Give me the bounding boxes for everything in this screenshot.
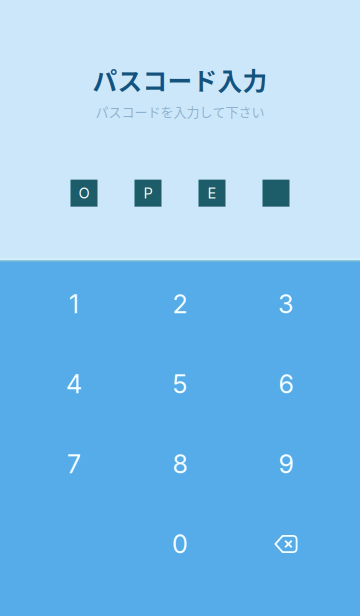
staticText: O: [78, 184, 89, 202]
button[interactable]: 0: [127, 504, 233, 584]
staticText: パスコード入力: [92, 62, 267, 98]
staticText: E: [207, 184, 216, 202]
staticText: P: [143, 184, 152, 202]
button[interactable]: Delete: [233, 504, 339, 584]
staticText: パスコードを入力して下さい: [95, 102, 264, 121]
staticText: 8: [172, 449, 187, 479]
button[interactable]: 5: [127, 344, 233, 424]
button[interactable]: 3: [233, 264, 339, 344]
staticText: 9: [278, 449, 293, 479]
staticText: 6: [278, 369, 293, 399]
staticText: 2: [172, 289, 187, 319]
staticText: 5: [172, 369, 187, 399]
button[interactable]: 4: [21, 344, 127, 424]
button[interactable]: 8: [127, 424, 233, 504]
staticText: 0: [172, 529, 188, 559]
staticText: 3: [278, 289, 294, 319]
button[interactable]: 6: [233, 344, 339, 424]
button[interactable]: 7: [21, 424, 127, 504]
button[interactable]: 9: [233, 424, 339, 504]
staticText: 1: [69, 289, 79, 319]
staticText: 4: [66, 369, 82, 399]
button[interactable]: 2: [127, 264, 233, 344]
staticText: 7: [67, 449, 81, 479]
button[interactable]: 1: [21, 264, 127, 344]
